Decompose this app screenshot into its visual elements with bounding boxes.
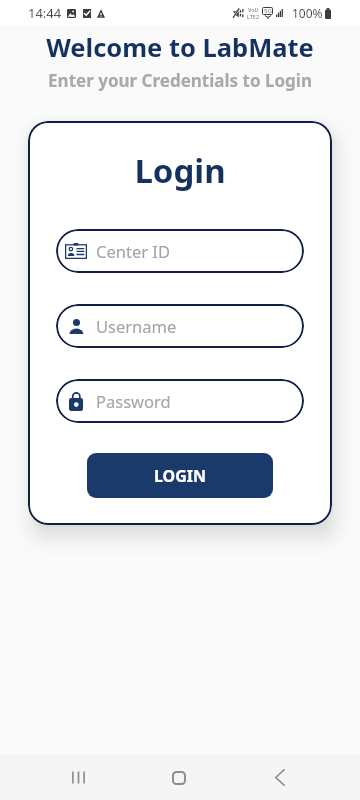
staticText: Login xyxy=(28,148,332,193)
staticText: 5G xyxy=(264,7,272,15)
button[interactable]: Back xyxy=(249,755,309,800)
staticText: Username xyxy=(96,315,177,337)
staticText: 14:44 xyxy=(28,4,62,22)
staticText: Welcome to LabMate xyxy=(0,30,360,65)
staticText: Password xyxy=(96,390,171,412)
button[interactable]: LOGIN xyxy=(87,453,273,498)
staticText: LTE2 xyxy=(247,13,260,20)
staticText: LOGIN xyxy=(154,465,207,487)
button[interactable]: Center ID xyxy=(56,229,304,273)
staticText: Enter your Credentials to Login xyxy=(0,69,360,92)
button[interactable]: Recent apps xyxy=(48,755,108,800)
staticText: VoU xyxy=(248,6,259,13)
staticText: Center ID xyxy=(96,240,170,262)
button[interactable]: Home xyxy=(149,755,209,800)
button[interactable]: Username xyxy=(56,304,304,348)
button[interactable]: Password xyxy=(56,379,304,423)
staticText: 100% xyxy=(292,5,323,21)
